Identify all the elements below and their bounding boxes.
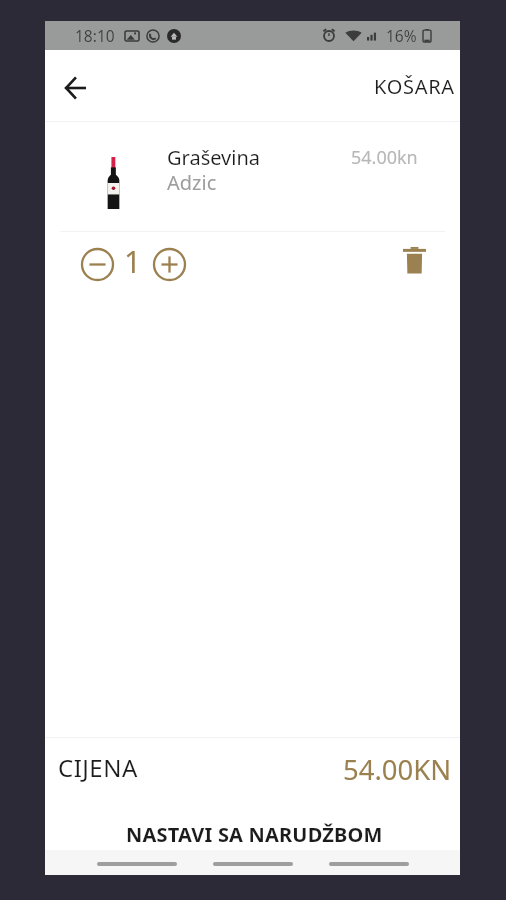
button[interactable]: NASTAVI SA NARUDŽBOM [45,803,460,850]
staticText: 54.00KN [343,751,452,788]
button[interactable]: Back [51,62,99,110]
button[interactable]: Delete item [393,239,435,281]
staticText: Adzic [167,169,217,196]
staticText: NASTAVI SA NARUDŽBOM [126,821,383,848]
staticText: 54.00kn [351,145,418,170]
button[interactable]: Decrease quantity [78,245,116,283]
staticText: CIJENA [58,751,138,784]
staticText: 16% [386,25,417,46]
button[interactable]: Increase quantity [150,245,188,283]
staticText: Graševina [167,144,260,171]
button[interactable]: Graševina [45,122,460,231]
staticText: 1 [124,241,142,282]
staticText: KOŠARA [374,73,455,100]
staticText: 18:10 [75,25,115,46]
